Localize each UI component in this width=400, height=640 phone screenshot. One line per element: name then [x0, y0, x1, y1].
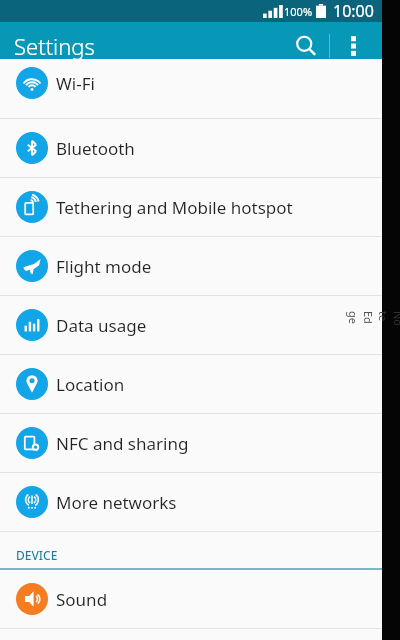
button[interactable]: Bluetooth	[0, 119, 382, 177]
staticText: Sound	[56, 588, 108, 611]
button[interactable]: Data usage	[0, 296, 382, 354]
button[interactable]: More options	[330, 23, 376, 69]
staticText: Tethering and Mobile hotspot	[56, 196, 293, 219]
staticText: Location	[56, 373, 125, 396]
staticText: DEVICE	[16, 547, 58, 563]
button[interactable]: Search	[283, 23, 329, 69]
staticText: NFC and sharing	[56, 432, 189, 455]
staticText: 100%	[284, 4, 313, 19]
staticText: Data usage	[56, 314, 147, 337]
button[interactable]: Location	[0, 355, 382, 413]
staticText: Flight mode	[56, 255, 152, 278]
staticText: Galaxy Note Edge	[346, 311, 400, 329]
button[interactable]: Tethering and Mobile hotspot	[0, 178, 382, 236]
staticText: Wi-Fi	[56, 72, 95, 95]
button[interactable]: More networks	[0, 473, 382, 531]
button[interactable]: Wi-Fi	[0, 59, 382, 107]
staticText: 10:00	[333, 0, 374, 22]
button[interactable]: NFC and sharing	[0, 414, 382, 472]
staticText: Settings	[14, 31, 95, 61]
button[interactable]: Sound	[0, 570, 382, 628]
button[interactable]: Flight mode	[0, 237, 382, 295]
staticText: Bluetooth	[56, 137, 135, 160]
staticText: More networks	[56, 491, 177, 514]
